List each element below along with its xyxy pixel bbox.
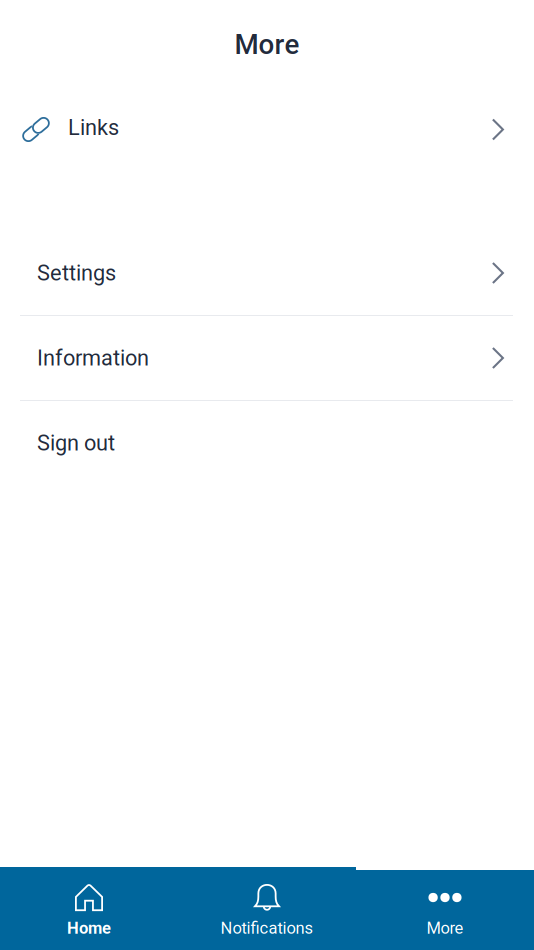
- button[interactable]: Settings: [0, 231, 534, 315]
- button[interactable]: More: [356, 870, 534, 950]
- staticText: Home: [67, 918, 111, 938]
- staticText: Information: [37, 345, 149, 371]
- staticText: More: [234, 28, 299, 61]
- staticText: More: [426, 918, 463, 938]
- button[interactable]: Information: [0, 316, 534, 400]
- button[interactable]: Notifications: [178, 870, 356, 950]
- staticText: Settings: [37, 260, 116, 286]
- staticText: Links: [68, 115, 119, 140]
- staticText: Sign out: [37, 430, 115, 456]
- button[interactable]: Sign out: [0, 401, 534, 485]
- staticText: Notifications: [220, 918, 313, 938]
- button[interactable]: Home: [0, 870, 178, 950]
- button[interactable]: Links: [0, 85, 534, 169]
